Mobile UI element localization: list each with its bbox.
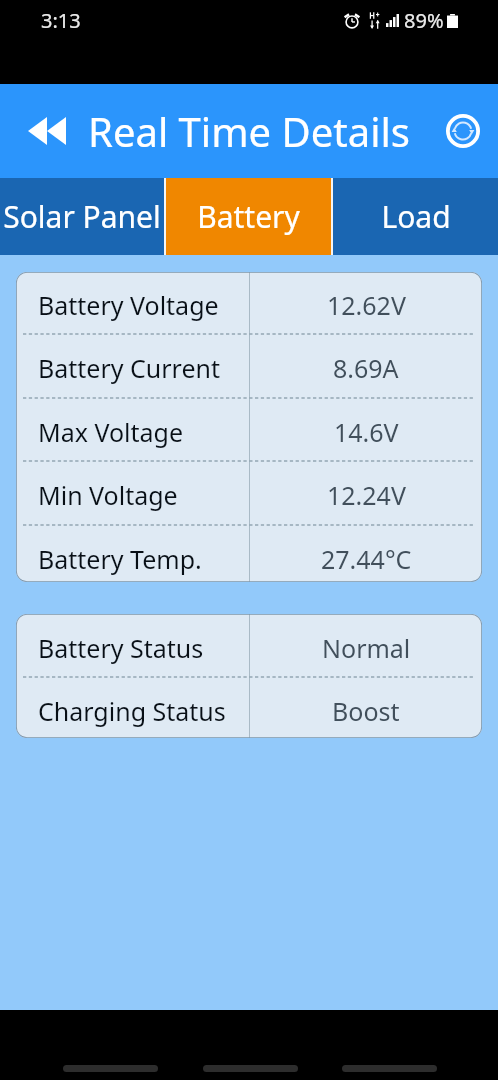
- button[interactable]: Back: [6, 90, 88, 172]
- button[interactable]: System navigation: [63, 1065, 158, 1072]
- button[interactable]: Load: [333, 178, 498, 255]
- staticText: Max Voltage: [38, 415, 184, 449]
- button[interactable]: System navigation: [203, 1065, 298, 1072]
- staticText: 27.44°C: [321, 542, 412, 576]
- staticText: Solar Panel: [3, 196, 161, 237]
- button[interactable]: System navigation: [342, 1065, 437, 1072]
- staticText: 12.62V: [327, 288, 406, 322]
- staticText: Battery Current: [38, 351, 220, 385]
- staticText: 3:13: [41, 7, 81, 34]
- staticText: 12.24V: [327, 478, 406, 512]
- staticText: Min Voltage: [38, 478, 178, 512]
- staticText: Battery Voltage: [38, 288, 219, 322]
- button[interactable]: Battery: [166, 178, 331, 255]
- button[interactable]: Charging Status: [16, 677, 482, 738]
- button[interactable]: Min Voltage: [16, 461, 482, 525]
- staticText: Normal: [322, 631, 411, 665]
- button[interactable]: Solar Panel: [0, 178, 164, 255]
- staticText: Real Time Details: [88, 104, 410, 158]
- staticText: 14.6V: [334, 415, 399, 449]
- button[interactable]: Battery Current: [16, 334, 482, 398]
- button[interactable]: Battery Status: [16, 614, 482, 677]
- button[interactable]: Battery Temp.: [16, 525, 482, 582]
- staticText: 8.69A: [333, 351, 399, 385]
- staticText: Battery Status: [38, 631, 204, 665]
- staticText: Load: [381, 196, 451, 237]
- staticText: Battery Temp.: [38, 542, 202, 576]
- button[interactable]: Refresh: [437, 105, 489, 157]
- staticText: 89%: [404, 7, 444, 34]
- staticText: Battery: [197, 196, 300, 237]
- button[interactable]: Battery Voltage: [16, 272, 482, 334]
- staticText: Boost: [332, 694, 400, 728]
- staticText: Charging Status: [38, 694, 226, 728]
- button[interactable]: Max Voltage: [16, 398, 482, 461]
